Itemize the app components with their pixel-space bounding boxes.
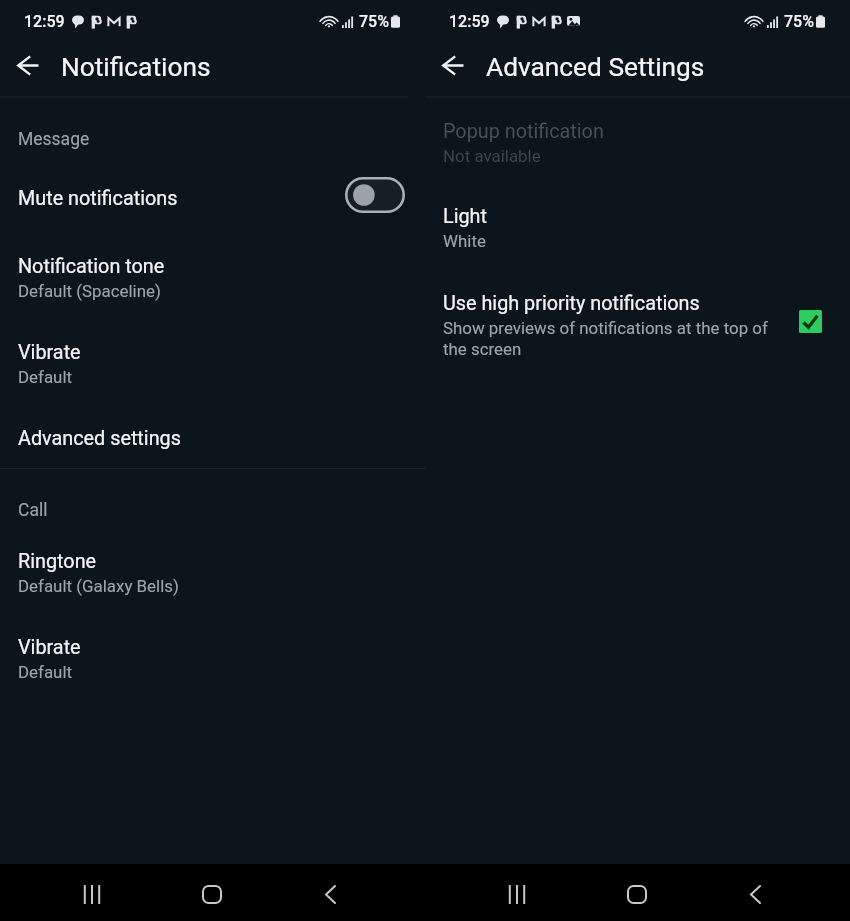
staticText: Advanced Settings xyxy=(486,52,705,83)
staticText: Notifications xyxy=(61,52,211,83)
staticText: 75% xyxy=(784,12,814,31)
staticText: Default xyxy=(18,367,73,387)
staticText: Vibrate xyxy=(18,636,81,659)
button[interactable]: Mute notifications xyxy=(0,178,425,218)
button[interactable]: Vibrate xyxy=(0,341,425,387)
button[interactable]: Navigate up xyxy=(6,43,50,87)
button[interactable]: Home xyxy=(577,866,696,921)
button[interactable]: Back xyxy=(271,866,390,921)
staticText: Ringtone xyxy=(18,550,97,573)
staticText: 12:59 xyxy=(449,12,490,31)
button[interactable]: Recent apps xyxy=(457,866,577,921)
staticText: 12:59 xyxy=(24,12,65,31)
button[interactable]: Notification tone xyxy=(0,255,425,301)
button[interactable]: Back xyxy=(696,866,815,921)
staticText: 75% xyxy=(359,12,389,31)
button[interactable]: Use high priority notifications xyxy=(425,292,850,360)
staticText: Popup notification xyxy=(443,120,604,143)
button[interactable]: Use high priority notifications xyxy=(795,306,825,336)
staticText: Not available xyxy=(443,146,541,166)
button[interactable]: Vibrate xyxy=(0,636,425,682)
staticText: Light xyxy=(443,205,487,228)
staticText: Show previews of notifications at the to… xyxy=(443,318,783,360)
staticText: Vibrate xyxy=(18,341,81,364)
staticText: Default (Galaxy Bells) xyxy=(18,576,179,596)
staticText: Default xyxy=(18,662,73,682)
staticText: Notification tone xyxy=(18,255,165,278)
button[interactable]: Ringtone xyxy=(0,550,425,596)
staticText: Call xyxy=(18,500,48,521)
staticText: Message xyxy=(18,129,90,150)
staticText: Default (Spaceline) xyxy=(18,281,161,301)
button[interactable]: Recent apps xyxy=(32,866,152,921)
staticText: White xyxy=(443,231,486,251)
button[interactable]: Advanced settings xyxy=(0,427,425,450)
button[interactable]: Navigate up xyxy=(431,43,475,87)
staticText: Advanced settings xyxy=(18,427,181,450)
staticText: Use high priority notifications xyxy=(443,292,700,315)
button[interactable]: Mute notifications xyxy=(345,177,405,213)
staticText: Mute notifications xyxy=(18,187,345,210)
button[interactable]: Home xyxy=(152,866,271,921)
button[interactable]: Light xyxy=(425,205,850,251)
